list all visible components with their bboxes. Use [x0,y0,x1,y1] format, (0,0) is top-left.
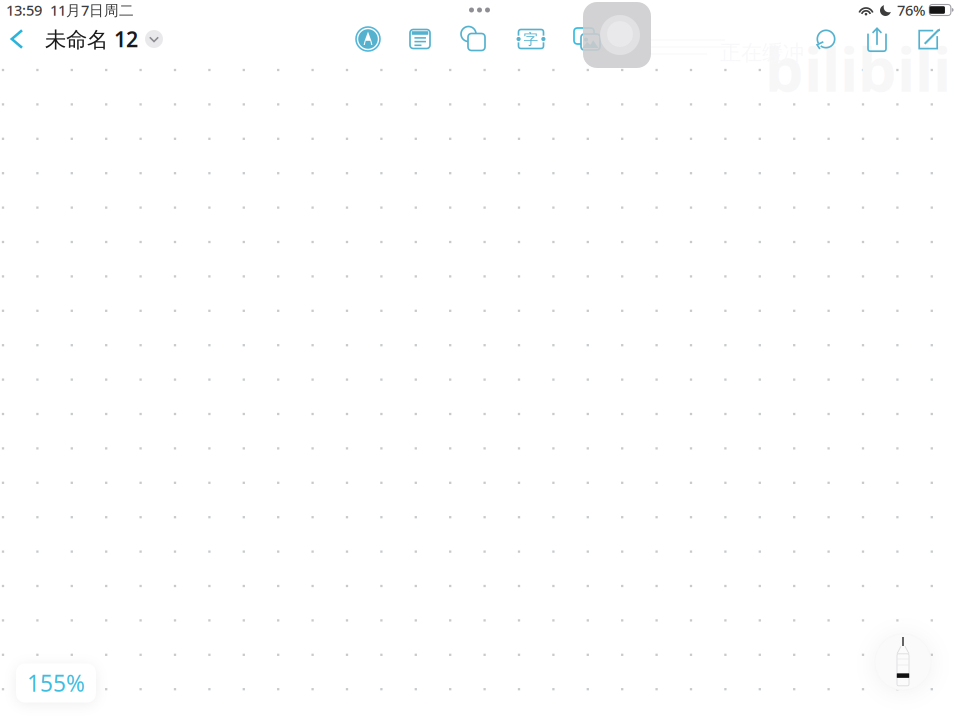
staticText: 未命名 12 [45,25,138,53]
button[interactable]: 未命名 12 [34,17,163,61]
staticText: 字 [523,30,538,48]
button[interactable]: 155% [16,663,96,702]
button[interactable]: Compose [907,17,951,61]
button[interactable]: Undo [804,17,848,61]
staticText: 11月7日周二 [50,0,134,20]
button[interactable]: Share [855,17,899,61]
button[interactable]: Shapes [449,16,497,62]
button[interactable]: Insert image [564,16,612,62]
button[interactable]: Text box [507,16,555,62]
staticText: 正在缓冲 [720,40,804,66]
staticText: 76% [897,0,925,20]
button[interactable]: Back [0,17,34,61]
staticText: 155% [27,668,85,698]
button[interactable]: Stylus [867,626,939,698]
button[interactable]: Sticky note [396,16,444,62]
button[interactable]: Pen tool [344,16,392,62]
staticText: bilibili [765,27,951,109]
staticText: 13:59 [6,0,42,20]
